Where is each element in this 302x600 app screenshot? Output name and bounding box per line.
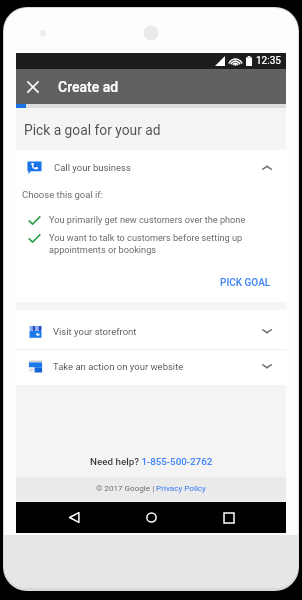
button[interactable]: Close xyxy=(21,75,45,99)
staticText: Visit your storefront xyxy=(53,326,137,337)
button[interactable]: PICK GOAL xyxy=(214,273,277,293)
staticText: You want to talk to customers before set… xyxy=(49,232,243,255)
staticText: You primarily get new customers over the… xyxy=(49,214,246,225)
staticText: Pick a goal for your ad xyxy=(24,122,161,138)
button[interactable]: Take an action on your website xyxy=(16,350,286,385)
button[interactable]: Need help? 1-855-500-2762 xyxy=(90,456,213,467)
staticText: Create ad xyxy=(58,79,119,95)
staticText: 12:35 xyxy=(256,55,281,67)
staticText: Call your business xyxy=(54,162,131,173)
button[interactable]: Back xyxy=(54,502,94,533)
staticText: PICK GOAL xyxy=(220,277,271,289)
button[interactable]: Call your business xyxy=(16,150,286,185)
button[interactable]: Recents xyxy=(209,502,249,533)
button[interactable]: © 2017 Google | Privacy Policy xyxy=(96,483,206,492)
staticText: Choose this goal if: xyxy=(22,189,103,200)
staticText: Take an action on your website xyxy=(53,361,184,372)
button[interactable]: Visit your storefront xyxy=(16,310,286,349)
button[interactable]: Home xyxy=(131,502,171,533)
